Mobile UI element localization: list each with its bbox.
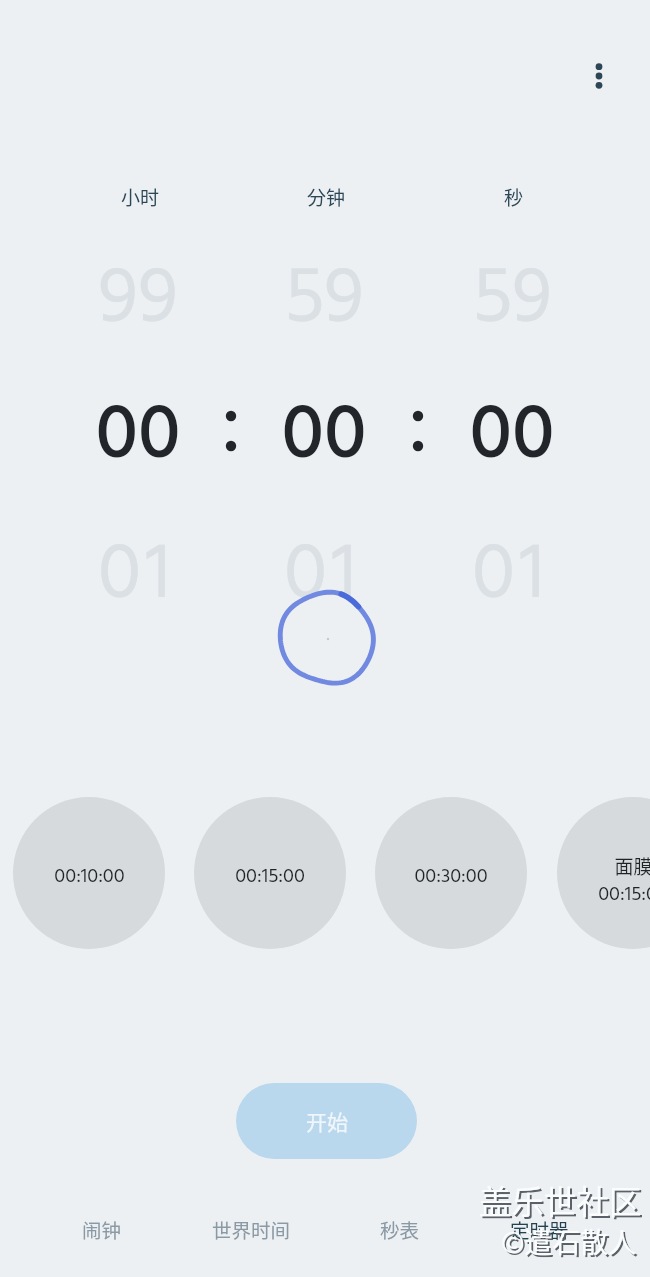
staticText: 00 xyxy=(281,375,367,470)
button[interactable]: 世界时间 xyxy=(183,1200,319,1258)
staticText: 5 xyxy=(472,238,512,328)
staticText: 9 xyxy=(138,238,178,328)
staticText: 定时器 xyxy=(510,1215,569,1243)
staticText: 00:15:00 xyxy=(235,861,305,887)
button[interactable] xyxy=(194,797,346,949)
button[interactable] xyxy=(557,797,650,949)
button[interactable]: 秒表 xyxy=(332,1200,468,1258)
staticText: 盖乐世社区 xyxy=(481,1178,644,1225)
button[interactable]: More options xyxy=(575,52,622,99)
staticText: 秒 xyxy=(504,183,524,211)
staticText: 5 xyxy=(284,238,324,328)
staticText: 9 xyxy=(324,238,364,328)
staticText: 00 xyxy=(95,375,181,470)
staticText: 0 xyxy=(98,514,138,604)
staticText: 开始 xyxy=(306,1106,348,1136)
staticText: 1 xyxy=(519,514,545,604)
staticText: 0 xyxy=(284,514,324,604)
staticText: 0 xyxy=(472,514,512,604)
button[interactable] xyxy=(13,797,165,949)
staticText: 秒表 xyxy=(380,1215,420,1243)
button[interactable]: 开始 xyxy=(236,1083,417,1159)
staticText: 00:30:00 xyxy=(414,861,488,887)
staticText: 00 xyxy=(469,375,555,470)
staticText: 盖乐世社区 xyxy=(479,1176,642,1223)
staticText: 世界时间 xyxy=(212,1215,291,1243)
staticText: ©遣石散人 xyxy=(501,1221,637,1262)
button[interactable]: 定时器 xyxy=(471,1200,607,1258)
button[interactable] xyxy=(375,797,527,949)
staticText: 9 xyxy=(98,238,138,328)
staticText: 1 xyxy=(145,514,171,604)
staticText: 9 xyxy=(512,238,552,328)
staticText: 00:15:00 xyxy=(598,879,650,905)
staticText: 分钟 xyxy=(307,183,346,211)
staticText: 面膜 xyxy=(614,852,650,878)
staticText: 闹钟 xyxy=(82,1215,122,1243)
button[interactable]: 闹钟 xyxy=(34,1200,170,1258)
staticText: 小时 xyxy=(121,183,160,211)
staticText: 1 xyxy=(331,514,357,604)
staticText: 00:10:00 xyxy=(54,861,125,887)
staticText: ©遣石散人 xyxy=(503,1223,639,1264)
